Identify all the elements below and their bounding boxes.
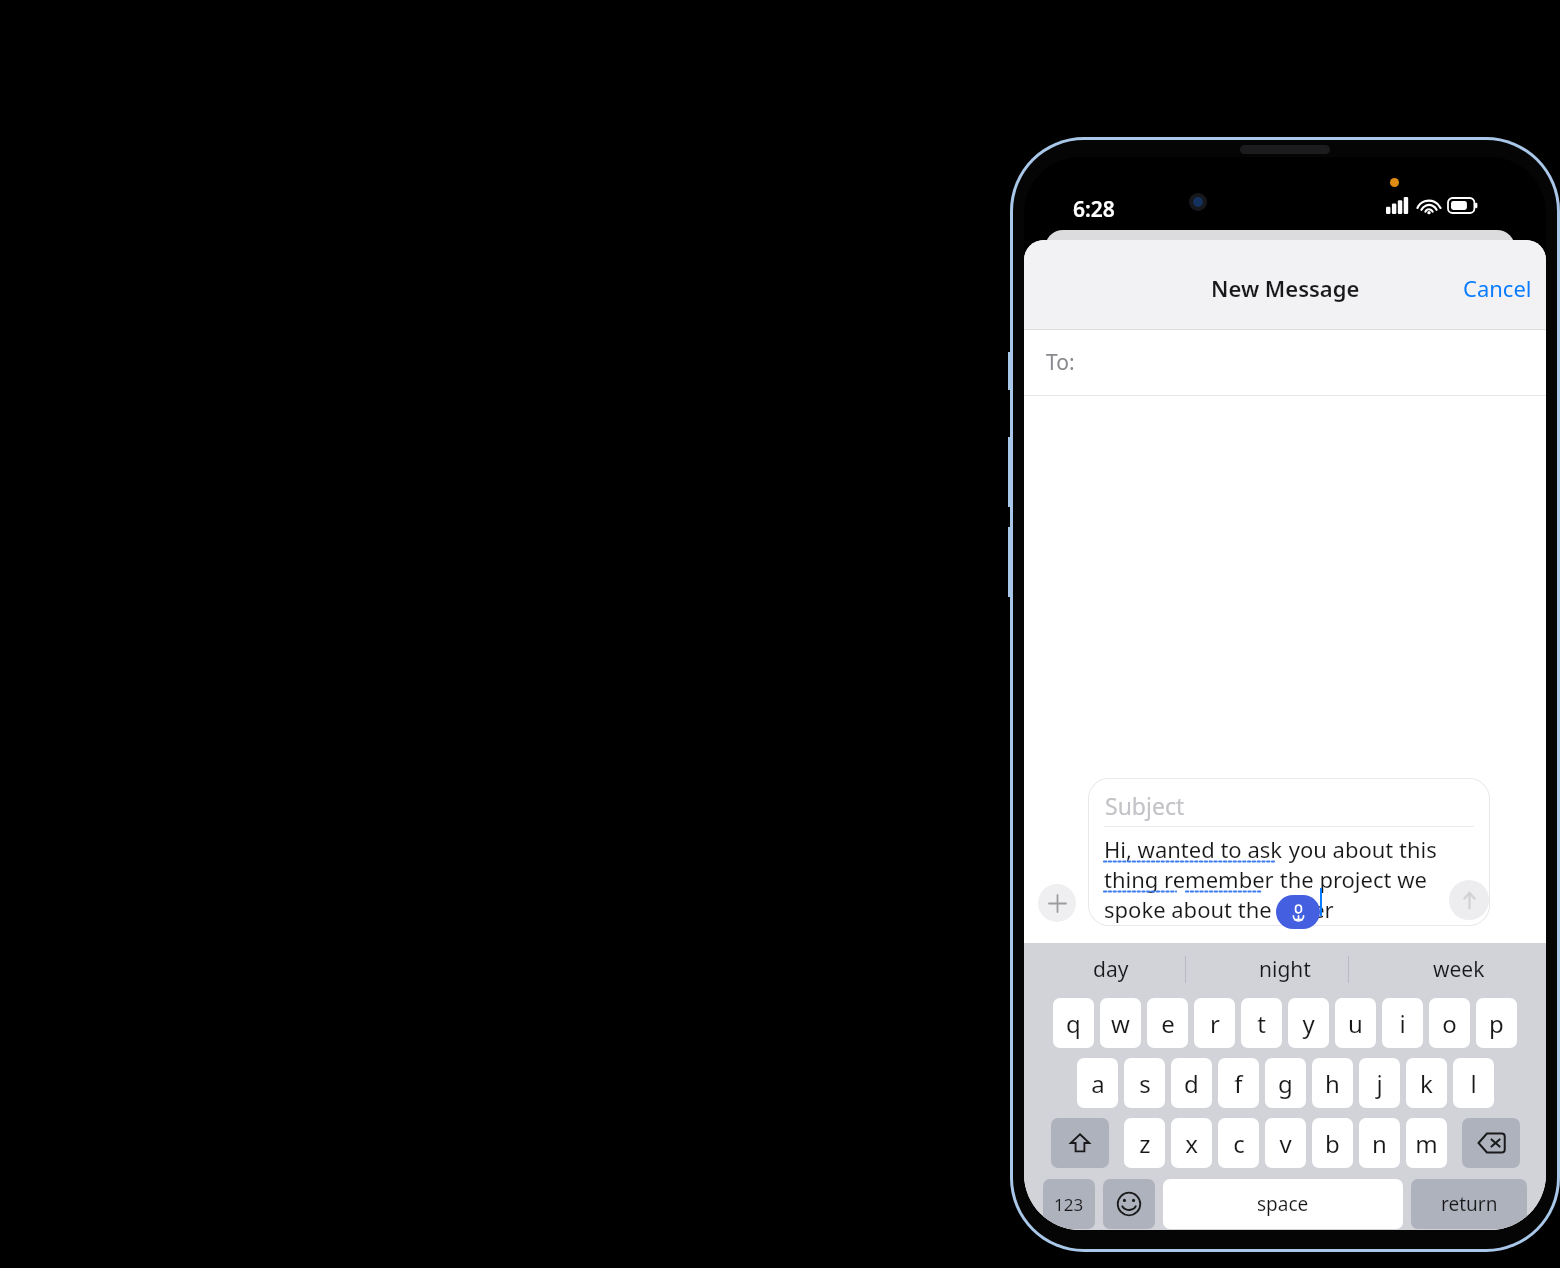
staticText: q — [1066, 1007, 1081, 1040]
button[interactable]: q — [1053, 998, 1094, 1048]
staticText: t — [1257, 1007, 1266, 1040]
staticText: 6:28 — [1073, 195, 1115, 224]
staticText: Hi, wanted to ask — [1104, 834, 1283, 864]
button[interactable]: t — [1241, 998, 1282, 1048]
staticText: d — [1184, 1067, 1199, 1100]
staticText: s — [1139, 1067, 1151, 1100]
staticText: j — [1376, 1067, 1383, 1100]
staticText: New Message — [1211, 273, 1360, 303]
button[interactable]: space — [1163, 1179, 1403, 1229]
staticText: c — [1233, 1127, 1245, 1160]
staticText: day — [1093, 955, 1129, 984]
button[interactable]: k — [1406, 1058, 1447, 1108]
button[interactable]: 123 — [1043, 1179, 1095, 1229]
button[interactable]: Shift — [1051, 1118, 1109, 1168]
staticText: 123 — [1054, 1193, 1084, 1216]
button[interactable]: Backspace — [1462, 1118, 1520, 1168]
button[interactable]: To: — [1024, 330, 1546, 395]
button[interactable]: j — [1359, 1058, 1400, 1108]
staticText: b — [1325, 1127, 1340, 1160]
staticText: the project we — [1274, 864, 1427, 894]
staticText: thing remember — [1104, 864, 1274, 894]
staticText: w — [1111, 1007, 1130, 1040]
staticText: z — [1139, 1127, 1151, 1160]
button[interactable]: g — [1265, 1058, 1306, 1108]
button[interactable]: Subject — [1088, 778, 1490, 926]
button[interactable]: w — [1100, 998, 1141, 1048]
button[interactable]: n — [1359, 1118, 1400, 1168]
staticText: g — [1278, 1067, 1293, 1100]
button[interactable]: y — [1288, 998, 1329, 1048]
button[interactable]: d — [1171, 1058, 1212, 1108]
button[interactable]: s — [1124, 1058, 1165, 1108]
staticText: spoke about the other — [1104, 894, 1334, 924]
button[interactable]: o — [1429, 998, 1470, 1048]
staticText: f — [1234, 1067, 1243, 1100]
staticText: To: — [1046, 348, 1075, 377]
button[interactable]: r — [1194, 998, 1235, 1048]
button[interactable]: Emoji — [1103, 1179, 1155, 1229]
button[interactable]: l — [1453, 1058, 1494, 1108]
button[interactable]: m — [1406, 1118, 1447, 1168]
staticText: Subject — [1105, 790, 1185, 821]
staticText: n — [1372, 1127, 1387, 1160]
staticText: i — [1399, 1007, 1406, 1040]
button[interactable]: u — [1335, 998, 1376, 1048]
staticText: m — [1415, 1127, 1438, 1160]
staticText: p — [1489, 1007, 1504, 1040]
button[interactable]: c — [1218, 1118, 1259, 1168]
button[interactable]: Send — [1449, 880, 1489, 920]
staticText: u — [1348, 1007, 1363, 1040]
staticText: r — [1210, 1007, 1220, 1040]
button[interactable]: h — [1312, 1058, 1353, 1108]
button[interactable]: b — [1312, 1118, 1353, 1168]
staticText: space — [1257, 1191, 1309, 1217]
button[interactable]: return — [1411, 1179, 1527, 1229]
button[interactable]: z — [1124, 1118, 1165, 1168]
button[interactable]: p — [1476, 998, 1517, 1048]
staticText: return — [1441, 1191, 1498, 1217]
button[interactable]: x — [1171, 1118, 1212, 1168]
button[interactable]: week — [1372, 943, 1546, 996]
button[interactable]: v — [1265, 1118, 1306, 1168]
staticText: h — [1325, 1067, 1340, 1100]
button[interactable]: Cancel — [1449, 263, 1546, 313]
button[interactable]: Dictate — [1276, 895, 1320, 929]
button[interactable]: Add attachment — [1038, 884, 1076, 922]
button[interactable]: e — [1147, 998, 1188, 1048]
staticText: x — [1185, 1127, 1198, 1160]
staticText: night — [1259, 955, 1311, 984]
staticText: y — [1302, 1007, 1315, 1040]
staticText: v — [1279, 1127, 1292, 1160]
button[interactable]: i — [1382, 998, 1423, 1048]
staticText: Cancel — [1463, 273, 1532, 303]
staticText: e — [1161, 1007, 1175, 1040]
button[interactable]: f — [1218, 1058, 1259, 1108]
button[interactable]: night — [1198, 943, 1372, 996]
button[interactable]: day — [1024, 943, 1198, 996]
staticText: a — [1091, 1067, 1105, 1100]
staticText: week — [1433, 955, 1485, 984]
staticText: o — [1442, 1007, 1457, 1040]
button[interactable]: a — [1077, 1058, 1118, 1108]
staticText: you about this — [1283, 834, 1437, 864]
staticText: l — [1470, 1067, 1477, 1100]
staticText: k — [1420, 1067, 1433, 1100]
